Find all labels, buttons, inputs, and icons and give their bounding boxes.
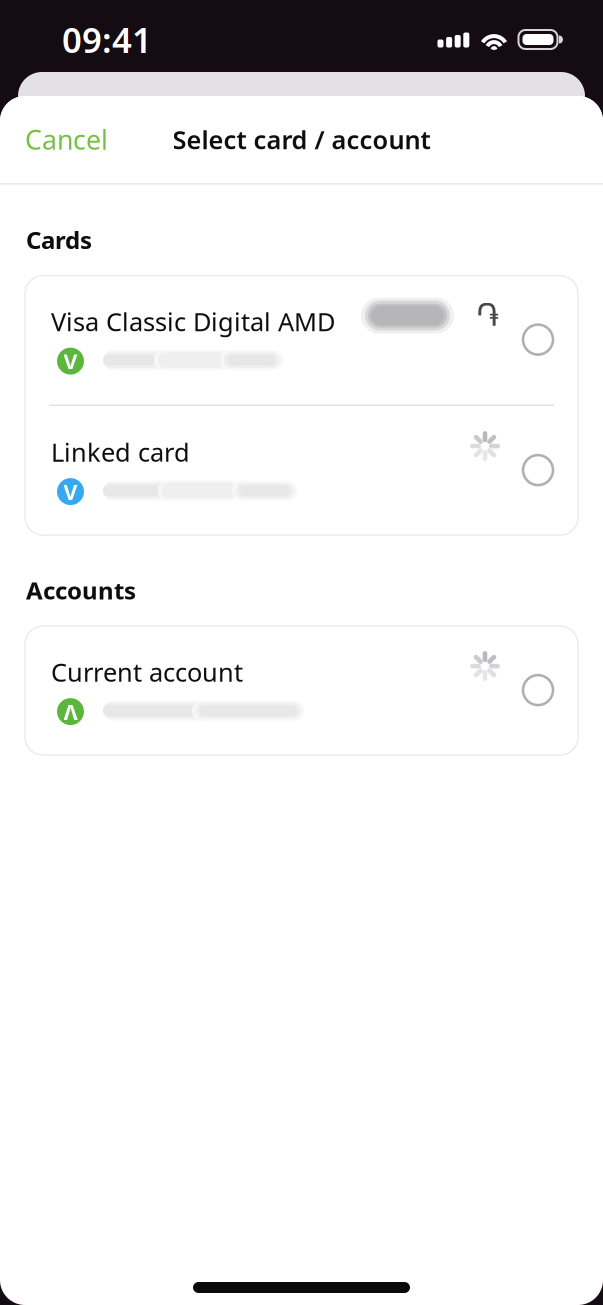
staticText: Current account bbox=[51, 655, 243, 689]
button[interactable]: Current account bbox=[25, 626, 578, 755]
staticText: ֏ bbox=[476, 302, 499, 331]
staticText: V bbox=[63, 347, 77, 375]
button[interactable]: Linked card bbox=[25, 406, 578, 535]
staticText: Visa Classic Digital AMD bbox=[51, 305, 335, 338]
staticText: Λ bbox=[63, 697, 77, 726]
staticText: 09:41 bbox=[62, 16, 152, 62]
staticText: Select card / account bbox=[172, 123, 430, 156]
staticText: Cancel bbox=[25, 122, 108, 157]
staticText: V bbox=[63, 477, 77, 506]
button[interactable]: Cancel bbox=[0, 104, 133, 175]
staticText: Cards bbox=[26, 224, 92, 256]
staticText: Linked card bbox=[51, 435, 190, 469]
staticText: Accounts bbox=[26, 574, 136, 606]
button[interactable]: Visa Classic Digital AMD bbox=[25, 276, 578, 405]
